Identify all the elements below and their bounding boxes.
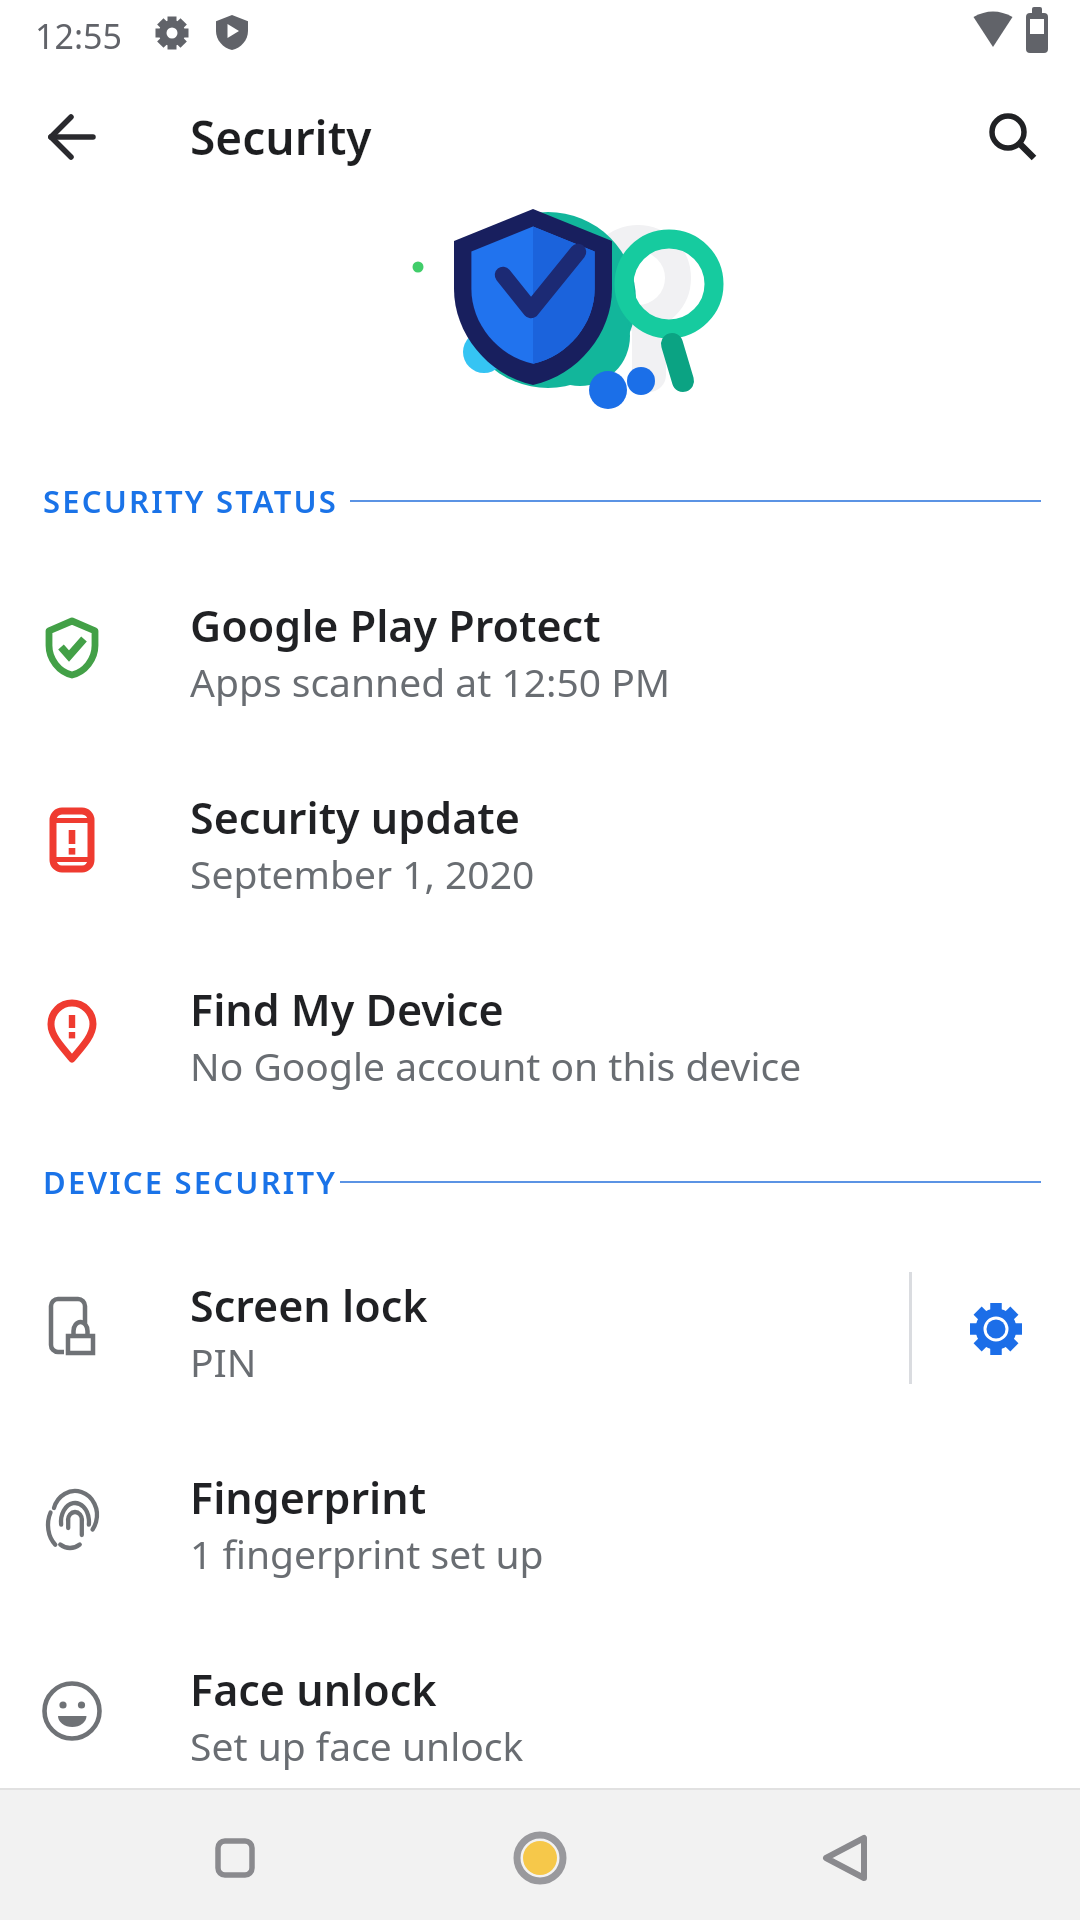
staticText: SECURITY STATUS <box>43 480 339 522</box>
staticText: Fingerprint <box>190 1468 427 1527</box>
staticText: DEVICE SECURITY <box>43 1161 338 1203</box>
button[interactable] <box>801 1814 889 1902</box>
button[interactable]: Screen lock <box>0 1237 1080 1427</box>
staticText: Find My Device <box>190 980 504 1039</box>
button[interactable]: Find My Device <box>0 941 1080 1131</box>
staticText: Apps scanned at 12:50 PM <box>190 655 671 708</box>
button[interactable]: Face unlock <box>0 1621 1080 1811</box>
staticText: No Google account on this device <box>190 1039 802 1092</box>
staticText: Security update <box>190 788 520 847</box>
staticText: September 1, 2020 <box>190 847 535 900</box>
button[interactable] <box>191 1814 279 1902</box>
staticText: Google Play Protect <box>190 596 601 655</box>
staticText: PIN <box>190 1335 257 1388</box>
staticText: 12:55 <box>35 13 122 59</box>
staticText: 1 fingerprint set up <box>190 1527 544 1580</box>
staticText: Security <box>190 106 372 169</box>
button[interactable]: Fingerprint <box>0 1429 1080 1619</box>
button[interactable]: Security update <box>0 749 1080 939</box>
button[interactable]: Google Play Protect <box>0 557 1080 747</box>
staticText: Screen lock <box>190 1276 428 1335</box>
staticText: Set up face unlock <box>190 1719 524 1772</box>
button[interactable] <box>28 93 116 181</box>
button[interactable] <box>952 1285 1040 1373</box>
button[interactable] <box>496 1814 584 1902</box>
staticText: Face unlock <box>190 1660 437 1719</box>
button[interactable] <box>967 91 1059 183</box>
